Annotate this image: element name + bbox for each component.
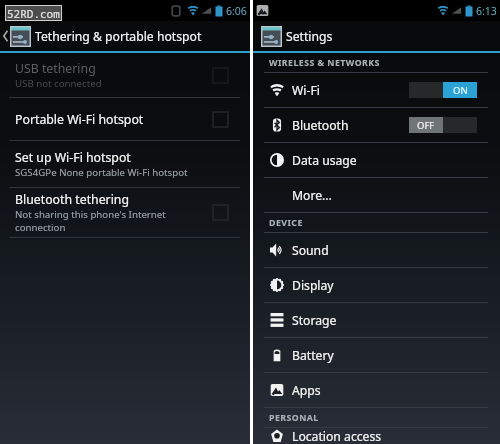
button[interactable]: Display	[253, 268, 500, 302]
staticText: Set up Wi-Fi hotspot	[15, 149, 131, 166]
staticText: ON	[453, 84, 468, 97]
staticText: Not sharing this phone's Internet connec…	[15, 208, 166, 234]
staticText: USB not connected	[15, 77, 102, 90]
button[interactable]	[213, 68, 228, 83]
staticText: Storage	[292, 312, 337, 329]
staticText: Bluetooth	[292, 117, 349, 134]
button[interactable]: Location access	[253, 428, 500, 444]
staticText: Sound	[292, 242, 329, 259]
button[interactable]: Bluetooth tethering	[0, 188, 250, 237]
staticText: 52RD.com	[7, 6, 60, 20]
staticText: 6:06	[226, 4, 247, 18]
staticText: Settings	[286, 28, 333, 45]
button[interactable]	[213, 205, 228, 220]
staticText: Portable Wi-Fi hotspot	[15, 111, 144, 128]
button[interactable]: Sound	[253, 233, 500, 267]
button[interactable]: Wi-Fi	[253, 73, 500, 107]
button[interactable]: Battery	[253, 338, 500, 372]
button[interactable]: ON	[409, 82, 477, 98]
staticText: OFF	[417, 119, 435, 132]
button[interactable]: Apps	[253, 373, 500, 407]
staticText: SGS4GPe None portable Wi-Fi hotspot	[15, 166, 188, 179]
staticText: More...	[292, 187, 332, 204]
button[interactable]: OFF	[409, 117, 477, 133]
staticText: Tethering & portable hotspot	[35, 28, 202, 45]
staticText: Wi-Fi	[292, 82, 320, 99]
staticText: USB tethering	[15, 60, 96, 77]
staticText: 6:13	[476, 4, 497, 18]
other: Auto-rotate	[170, 5, 182, 17]
button[interactable]: Portable Wi-Fi hotspot	[0, 98, 250, 140]
button[interactable]: Settings	[253, 21, 500, 51]
staticText: Battery	[292, 347, 334, 364]
button[interactable]: Data usage	[253, 143, 500, 177]
other: Back	[3, 30, 8, 42]
staticText: DEVICE	[269, 217, 303, 229]
button[interactable]: Set up Wi-Fi hotspot	[0, 141, 250, 187]
staticText: Display	[292, 277, 334, 294]
staticText: Apps	[292, 382, 321, 399]
button[interactable]: USB tethering	[0, 53, 250, 97]
button[interactable]	[213, 112, 228, 127]
button[interactable]: Storage	[253, 303, 500, 337]
staticText: Bluetooth tethering	[15, 191, 130, 208]
button[interactable]: Back	[0, 21, 250, 51]
button[interactable]: More...	[253, 178, 500, 212]
staticText: PERSONAL	[269, 412, 319, 424]
button[interactable]: Bluetooth	[253, 108, 500, 142]
staticText: Data usage	[292, 152, 357, 169]
staticText: WIRELESS & NETWORKS	[269, 57, 380, 69]
staticText: Location access	[292, 428, 382, 444]
